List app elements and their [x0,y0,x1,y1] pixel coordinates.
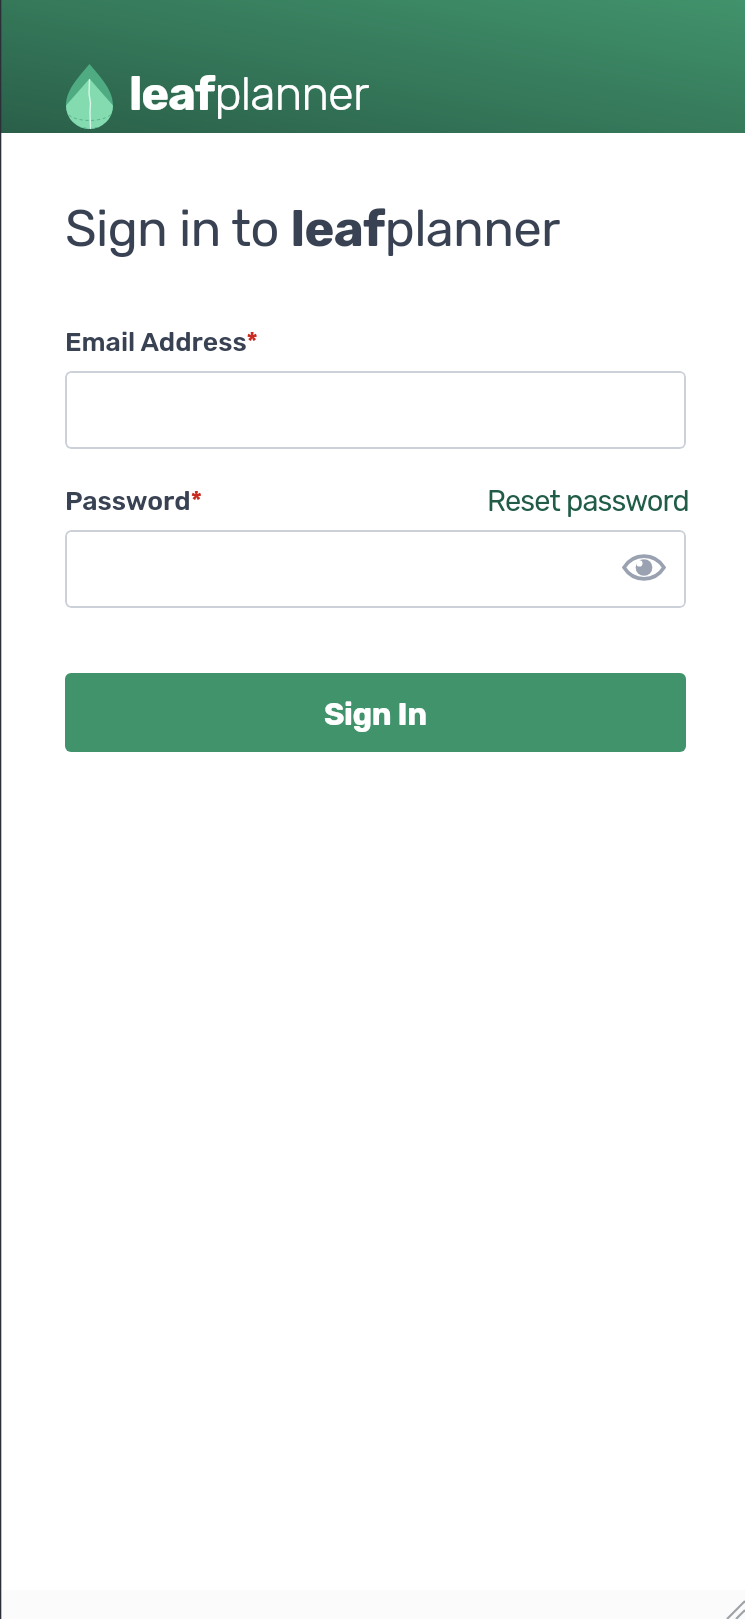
button[interactable]: Email Address field [65,371,686,449]
staticText: leafplanner [129,66,369,122]
staticText: Sign In [324,696,427,733]
button[interactable]: Show password [614,539,674,595]
staticText: Sign in to leafplanner [65,198,560,258]
staticText: Password* [65,485,203,516]
button[interactable]: Sign In [65,673,686,752]
button[interactable]: Reset password [487,484,689,518]
staticText: Email Address* [65,326,259,357]
